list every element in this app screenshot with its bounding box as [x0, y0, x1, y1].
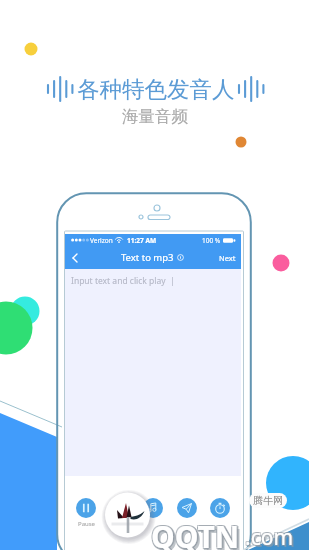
staticText: Next [219, 253, 236, 263]
staticText: .com [244, 524, 293, 550]
button[interactable]: Action [177, 498, 197, 518]
button[interactable]: Action [110, 498, 130, 518]
button[interactable]: Back [65, 248, 85, 268]
staticText: Verizon [90, 236, 113, 245]
button[interactable]: Next [219, 253, 236, 263]
button[interactable]: Action [143, 498, 163, 518]
staticText: .com [244, 522, 293, 550]
staticText: Pause [78, 520, 95, 528]
staticText: QQTN [154, 519, 243, 550]
staticText: Input text and click play | [71, 275, 175, 287]
staticText: .com [245, 523, 294, 550]
staticText: 11:27 AM [127, 236, 157, 245]
staticText: .com [246, 524, 295, 550]
staticText: QQTN [153, 516, 242, 550]
staticText: 各种特色发音人 [77, 75, 235, 103]
staticText: .com [247, 525, 296, 550]
staticText: QQTN [151, 516, 240, 550]
staticText: QQTN [151, 518, 240, 550]
button[interactable]: Action [210, 498, 230, 518]
staticText: 100 % [202, 236, 221, 245]
staticText: QQTN [152, 515, 241, 550]
staticText: QQTN [150, 517, 239, 550]
staticText: .com [246, 522, 295, 550]
button[interactable]: Pause [76, 498, 96, 518]
staticText: Text to mp3 [121, 251, 174, 264]
staticText: QQTN [152, 517, 241, 550]
staticText: QQTN [150, 515, 239, 550]
staticText: 腾牛网 [253, 494, 283, 507]
staticText: 海量音频 [122, 106, 188, 127]
